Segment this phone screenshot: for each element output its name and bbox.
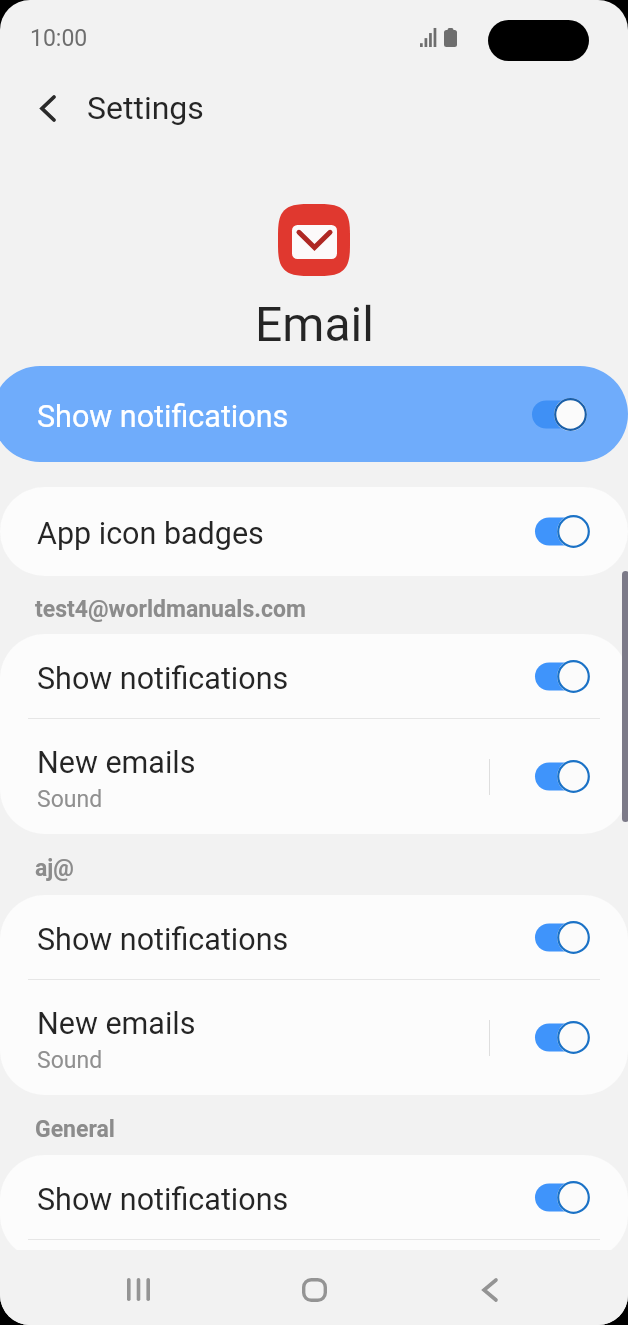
staticText: Show notifications [37, 399, 289, 435]
button[interactable]: Show notifications [0, 895, 628, 979]
button[interactable]: Show notifications [0, 1155, 628, 1239]
staticText: Show notifications [37, 1182, 289, 1218]
staticText: Settings [87, 89, 204, 127]
button[interactable]: Toggle on [532, 398, 587, 431]
button[interactable]: New emails [0, 719, 628, 834]
staticText: aj@ [35, 855, 74, 882]
button[interactable]: Toggle on [535, 515, 590, 548]
button[interactable]: New emails [0, 980, 628, 1095]
staticText: Sound [37, 786, 103, 813]
button[interactable]: Back [450, 1254, 530, 1325]
button[interactable]: Toggle on [535, 1181, 590, 1214]
staticText: New emails [37, 1006, 196, 1042]
button[interactable]: Toggle on [535, 660, 590, 693]
button[interactable]: Toggle on [535, 1021, 590, 1054]
button[interactable]: Toggle on [535, 760, 590, 793]
button[interactable]: Show notifications [0, 634, 628, 718]
staticText: 10:00 [30, 25, 88, 52]
staticText: Show notifications [37, 922, 289, 958]
staticText: General [35, 1116, 115, 1143]
button[interactable]: Back [24, 84, 72, 132]
staticText: test4@worldmanuals.com [35, 596, 306, 623]
staticText: App icon badges [37, 516, 264, 552]
staticText: Sound [37, 1047, 103, 1074]
button[interactable]: Toggle on [535, 921, 590, 954]
staticText: New emails [37, 745, 196, 781]
staticText: Show notifications [37, 661, 289, 697]
button[interactable]: Show notifications [0, 366, 628, 462]
staticText: Email [255, 296, 374, 352]
button[interactable]: Home [274, 1254, 354, 1325]
button[interactable]: App icon badges [0, 487, 628, 576]
button[interactable]: Recent apps [98, 1254, 178, 1325]
